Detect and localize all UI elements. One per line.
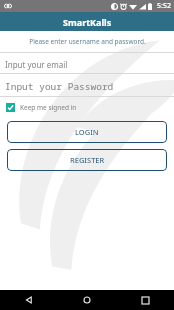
button[interactable]: Recent apps xyxy=(116,290,174,310)
button[interactable]: REGISTER xyxy=(7,149,167,171)
button[interactable]: Home xyxy=(58,290,116,310)
staticText: REGISTER xyxy=(70,155,105,165)
staticText: SmartKalls xyxy=(63,16,112,28)
button[interactable]: LOGIN xyxy=(7,121,167,143)
staticText: 5:52 xyxy=(157,1,171,11)
button[interactable]: Input your Password xyxy=(0,77,174,97)
staticText: Input your Password xyxy=(5,80,114,93)
staticText: Please enter username and password. xyxy=(29,37,146,46)
button[interactable]: Keep me signed in xyxy=(0,101,174,114)
staticText: Input your email xyxy=(5,59,68,70)
button[interactable]: Input your email xyxy=(0,56,174,74)
staticText: LOGIN xyxy=(75,127,99,137)
staticText: Keep me signed in xyxy=(20,103,77,112)
button[interactable]: Back xyxy=(0,290,58,310)
